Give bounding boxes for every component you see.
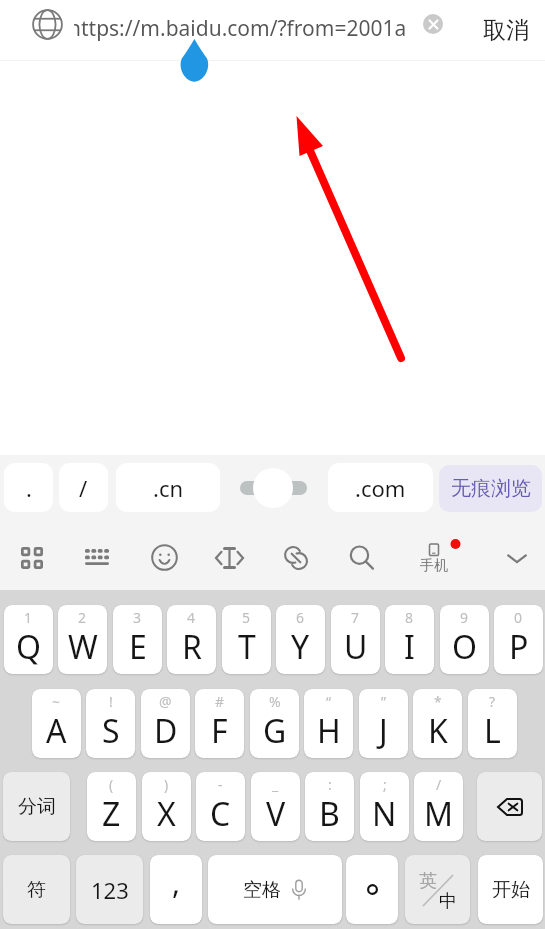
button[interactable]: ~ <box>32 689 81 758</box>
staticText: 无痕浏览 <box>451 476 531 501</box>
staticText: Y <box>291 625 310 669</box>
staticText: F <box>211 709 228 753</box>
button[interactable]: : <box>305 772 354 841</box>
button[interactable]: Backspace <box>477 772 542 841</box>
button[interactable]: Full stop <box>346 855 398 924</box>
button[interactable]: 开始 <box>478 855 543 924</box>
staticText: 0 <box>514 608 523 627</box>
button[interactable]: 9 <box>440 605 489 674</box>
button[interactable]: . <box>4 463 53 512</box>
button[interactable]: .cn <box>116 463 220 512</box>
button[interactable]: % <box>250 689 299 758</box>
button[interactable]: 无痕浏览 <box>439 465 542 512</box>
button[interactable]: Clipboard <box>266 525 326 590</box>
staticText: 英 <box>419 870 437 893</box>
button[interactable]: .com <box>328 463 433 512</box>
button[interactable]: 0 <box>494 605 543 674</box>
staticText: G <box>263 709 287 753</box>
staticText: 9 <box>460 608 469 627</box>
button[interactable]: Toggle incognito <box>240 481 307 495</box>
staticText: - <box>218 775 223 794</box>
staticText: 2 <box>78 608 87 627</box>
button[interactable]: Comma <box>150 855 202 924</box>
staticText: 空格 <box>243 878 281 902</box>
button[interactable]: * <box>413 689 462 758</box>
staticText: L <box>484 709 501 753</box>
button[interactable]: 6 <box>276 605 325 674</box>
button[interactable]: 4 <box>167 605 216 674</box>
staticText: @ <box>159 692 172 711</box>
staticText: T <box>238 625 256 669</box>
button[interactable]: Clear <box>423 14 443 34</box>
button[interactable]: 7 <box>331 605 380 674</box>
staticText: K <box>428 709 448 753</box>
staticText: % <box>269 692 281 711</box>
staticText: “ <box>326 692 332 711</box>
button[interactable]: ? <box>468 689 517 758</box>
button[interactable]: Switch language <box>405 855 470 924</box>
staticText: R <box>182 625 202 669</box>
button[interactable]: / <box>414 772 463 841</box>
staticText: 手机 <box>420 557 448 575</box>
button[interactable]: @ <box>141 689 190 758</box>
staticText: 开始 <box>492 878 530 902</box>
button[interactable]: 符 <box>3 855 70 924</box>
staticText: _ <box>272 775 279 794</box>
staticText: : <box>328 775 332 794</box>
button[interactable]: ! <box>86 689 135 758</box>
staticText: ” <box>381 692 387 711</box>
staticText: 7 <box>351 608 360 627</box>
staticText: O <box>452 625 477 669</box>
staticText: U <box>344 625 368 669</box>
staticText: H <box>317 709 341 753</box>
button[interactable]: 8 <box>385 605 434 674</box>
button[interactable]: 分词 <box>3 772 70 841</box>
button[interactable]: Phone <box>405 525 465 590</box>
button[interactable]: # <box>195 689 244 758</box>
button[interactable]: 2 <box>58 605 107 674</box>
button[interactable]: 3 <box>113 605 162 674</box>
staticText: I <box>404 625 415 669</box>
staticText: , <box>172 862 181 903</box>
staticText: A <box>46 709 67 753</box>
staticText: * <box>434 692 442 711</box>
button[interactable]: Hide keyboard <box>487 525 545 590</box>
staticText: 1 <box>24 608 33 627</box>
staticText: 中 <box>439 890 457 913</box>
button[interactable]: Move cursor <box>199 525 259 590</box>
staticText: / <box>436 775 442 794</box>
staticText: 4 <box>187 608 196 627</box>
staticText: / <box>79 473 88 503</box>
staticText: https://m.baidu.com/?from=2001a <box>74 14 414 43</box>
button[interactable]: 123 <box>76 855 143 924</box>
staticText: D <box>154 709 178 753</box>
staticText: ~ <box>52 692 61 711</box>
button[interactable]: _ <box>251 772 300 841</box>
staticText: 8 <box>405 608 414 627</box>
button[interactable]: https://m.baidu.com/?from=2001a <box>74 0 420 61</box>
staticText: 3 <box>133 608 142 627</box>
staticText: 5 <box>242 608 251 627</box>
button[interactable]: ” <box>359 689 408 758</box>
button[interactable]: Keyboard layout <box>67 525 127 590</box>
button[interactable]: Emoji <box>134 525 194 590</box>
staticText: C <box>210 792 231 836</box>
staticText: X <box>157 792 176 836</box>
button[interactable]: 5 <box>222 605 271 674</box>
button[interactable]: “ <box>304 689 353 758</box>
button[interactable]: 取消 <box>471 0 541 61</box>
staticText: V <box>266 792 286 836</box>
staticText: 6 <box>296 608 305 627</box>
button[interactable]: Panel <box>2 525 62 590</box>
staticText: ( <box>109 775 114 794</box>
button[interactable]: ; <box>360 772 409 841</box>
button[interactable]: Search <box>332 525 392 590</box>
button[interactable]: - <box>196 772 245 841</box>
button[interactable]: Site info <box>26 3 68 45</box>
button[interactable]: / <box>59 463 108 512</box>
button[interactable]: Space <box>208 855 342 924</box>
button[interactable]: ) <box>142 772 191 841</box>
button[interactable]: 1 <box>4 605 53 674</box>
button[interactable]: ( <box>87 772 136 841</box>
staticText: P <box>509 625 529 669</box>
